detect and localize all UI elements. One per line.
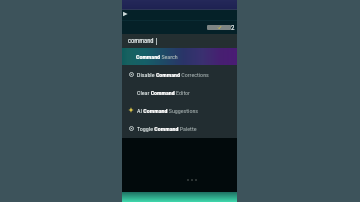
- button[interactable]: Selection count: [207, 25, 231, 30]
- button[interactable]: command: [122, 34, 237, 48]
- staticText: AI Command Suggestions: [137, 107, 199, 114]
- staticText: Clear Command Editor: [137, 89, 190, 96]
- staticText: Command Search: [136, 53, 178, 60]
- button[interactable]: Clear Command Editor: [122, 83, 237, 101]
- staticText: command: [128, 37, 154, 45]
- staticText: Disable Command Corrections: [137, 71, 209, 78]
- other: Play: [122, 11, 128, 17]
- button[interactable]: Disable Command Corrections: [122, 65, 237, 83]
- button[interactable]: Command Search: [122, 48, 237, 65]
- staticText: Toggle Command Palette: [137, 125, 197, 132]
- staticText: 2: [231, 24, 235, 32]
- button[interactable]: AI Command Suggestions: [122, 101, 237, 119]
- button[interactable]: Toggle Command Palette: [122, 119, 237, 137]
